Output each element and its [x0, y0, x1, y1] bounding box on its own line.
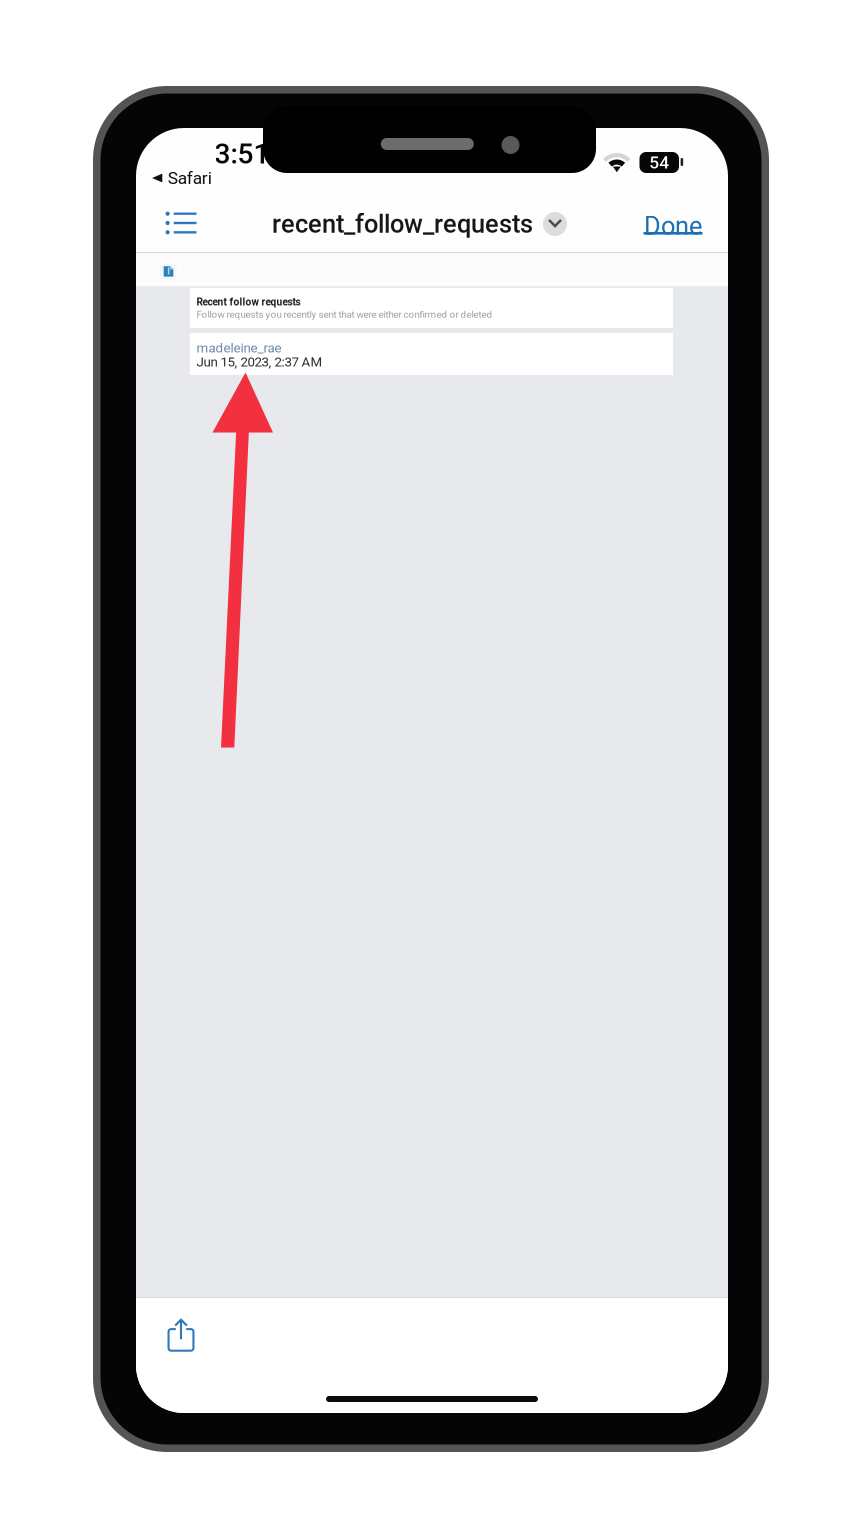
staticText: madeleine_rae	[196, 340, 281, 356]
staticText: Recent follow requests	[196, 296, 300, 308]
staticText: Safari	[168, 168, 212, 188]
staticText: Follow requests you recently sent that w…	[196, 309, 492, 320]
staticText: Jun 15, 2023, 2:37 AM	[196, 354, 322, 370]
button[interactable]: Done	[635, 202, 711, 250]
staticText: 54	[649, 152, 669, 173]
staticText: Done	[644, 211, 702, 241]
staticText: recent_follow_requests	[272, 209, 533, 239]
button[interactable]: recent_follow_requests, document options	[266, 202, 568, 250]
button[interactable]: Outline	[165, 212, 196, 234]
staticText: 3:51	[214, 138, 269, 170]
button[interactable]: Share	[167, 1318, 194, 1352]
button[interactable]: madeleine_rae, Jun 15, 2023, 2:37 AM	[190, 333, 673, 375]
button[interactable]: Back to Safari	[152, 170, 230, 186]
